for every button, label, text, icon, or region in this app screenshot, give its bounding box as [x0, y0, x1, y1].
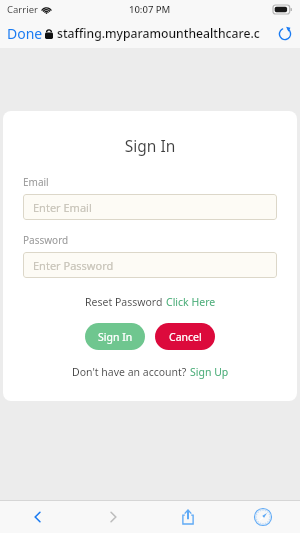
staticText: Password: [23, 233, 69, 247]
staticText: Sign In: [23, 135, 277, 156]
staticText: staffing.myparamounthealthcare.c: [57, 25, 260, 42]
button[interactable]: Enter Email: [23, 194, 277, 220]
staticText: Enter Email: [33, 200, 92, 215]
button[interactable]: Reload page: [274, 23, 296, 45]
button[interactable]: Click Here: [166, 295, 216, 309]
button[interactable]: Done: [0, 21, 50, 46]
staticText: Carrier: [7, 3, 38, 16]
staticText: Enter Password: [33, 258, 114, 273]
staticText: Don't have an account?: [72, 365, 190, 379]
button[interactable]: Share: [150, 501, 225, 533]
button[interactable]: Enter Password: [23, 252, 277, 278]
staticText: Done: [7, 24, 43, 43]
button[interactable]: Cancel: [155, 323, 215, 350]
staticText: Sign Up: [190, 365, 229, 379]
button[interactable]: Back: [0, 501, 75, 533]
staticText: Reset Password: [85, 295, 166, 309]
button[interactable]: Forward: [75, 501, 150, 533]
staticText: Sign In: [98, 330, 133, 344]
button[interactable]: Sign Up: [190, 365, 229, 379]
button[interactable]: Bookmarks: [225, 501, 300, 533]
staticText: Cancel: [169, 330, 202, 344]
staticText: Email: [23, 175, 49, 189]
button[interactable]: Sign In: [85, 323, 145, 350]
staticText: 10:07 PM: [129, 3, 171, 16]
staticText: Click Here: [166, 295, 216, 309]
button[interactable]: staffing.myparamounthealthcare.c: [41, 23, 264, 44]
